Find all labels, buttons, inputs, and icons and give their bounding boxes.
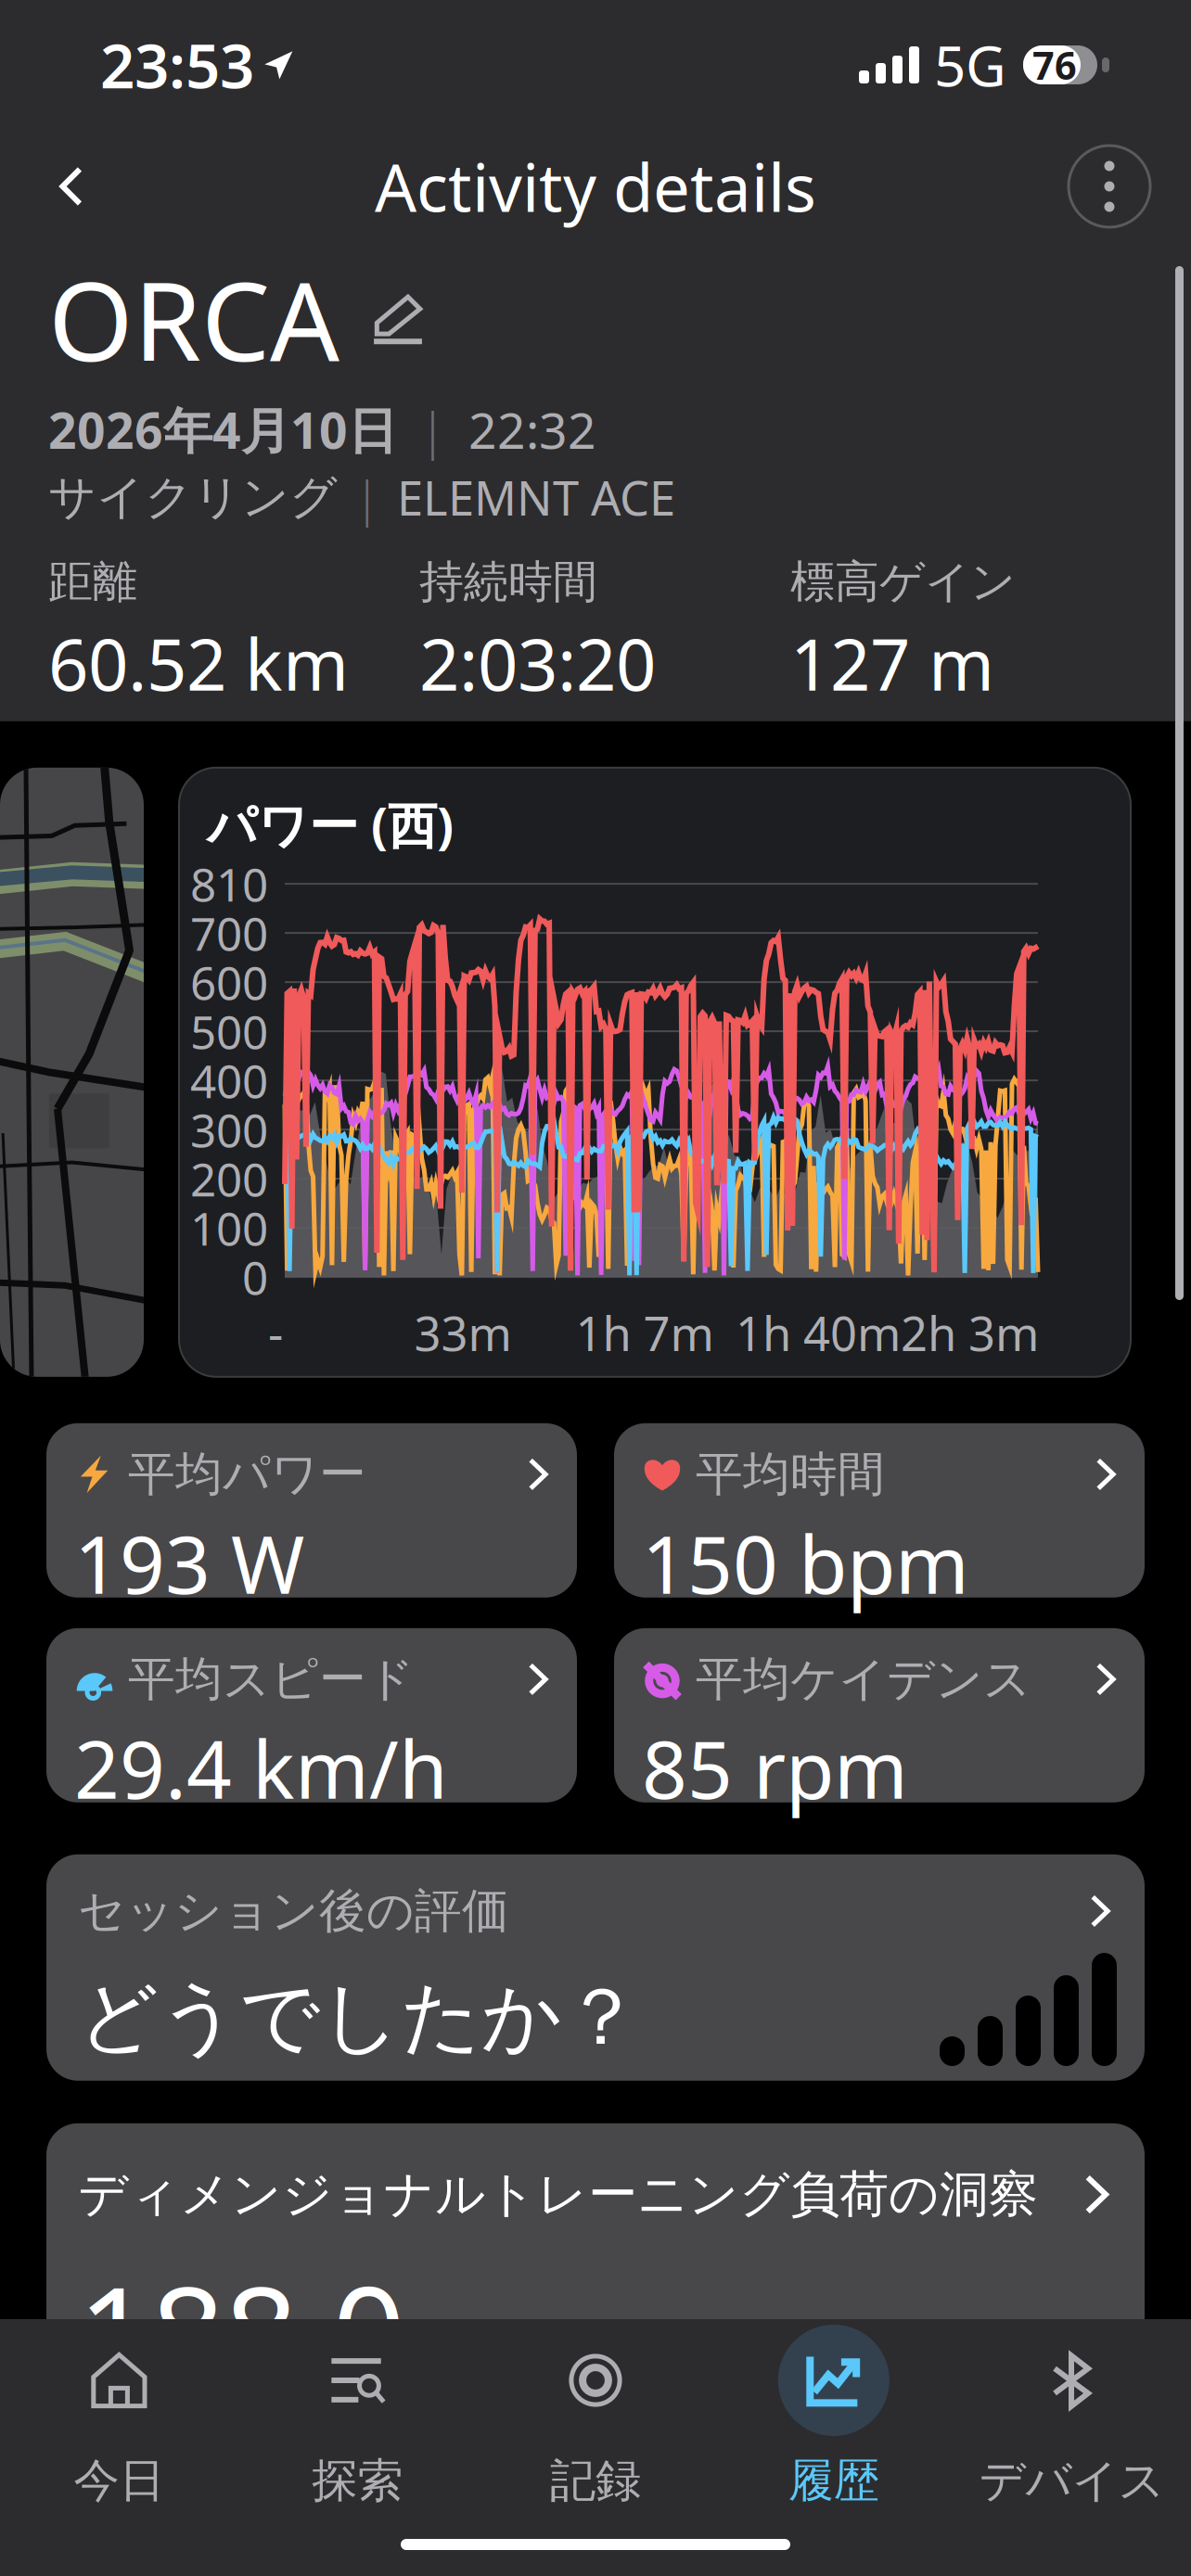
staticText: セッション後の評価 xyxy=(78,1882,509,1940)
button[interactable]: 平均時間 xyxy=(614,1423,1145,1598)
staticText: 127 m xyxy=(790,617,994,710)
staticText: 188.0 xyxy=(78,2245,405,2416)
staticText: | xyxy=(419,397,446,462)
staticText: 距離 xyxy=(48,554,137,609)
button[interactable]: 今日 xyxy=(0,2325,238,2509)
staticText: 700 xyxy=(190,903,268,963)
staticText: ディメンジョナルトレーニング負荷の洞察 xyxy=(78,2164,1038,2225)
staticText: どうでしたか？ xyxy=(78,1969,641,2066)
button[interactable]: 記録 xyxy=(476,2325,715,2509)
button[interactable]: More options xyxy=(1063,140,1156,233)
staticText: 500 xyxy=(190,1001,268,1062)
staticText: 60.52 km xyxy=(48,617,349,710)
staticText: 400 xyxy=(190,1050,268,1111)
staticText: サイクリング xyxy=(48,468,338,526)
button[interactable]: デバイス xyxy=(953,2325,1191,2509)
staticText: 200 xyxy=(190,1148,268,1209)
staticText: - xyxy=(268,1302,283,1364)
staticText: 平均スピード xyxy=(128,1650,415,1708)
staticText: | xyxy=(354,466,380,528)
staticText: 100 xyxy=(190,1197,268,1258)
button[interactable]: 平均スピード xyxy=(46,1628,577,1802)
staticText: 今日 xyxy=(74,2453,165,2509)
staticText: Activity details xyxy=(375,143,816,230)
staticText: 平均ケイデンス xyxy=(696,1650,1031,1708)
button[interactable]: 平均パワー xyxy=(46,1423,577,1598)
staticText: 300 xyxy=(190,1099,268,1160)
button[interactable]: 履歴 xyxy=(715,2325,953,2509)
staticText: 標高ゲイン xyxy=(790,554,1016,609)
staticText: 22:32 xyxy=(468,397,596,462)
staticText: 2:03:20 xyxy=(419,617,656,710)
staticText: ELEMNT ACE xyxy=(397,466,675,528)
staticText: ORCA xyxy=(48,247,339,391)
staticText: 探索 xyxy=(312,2453,403,2509)
staticText: 193 W xyxy=(74,1511,304,1616)
staticText: 85 rpm xyxy=(642,1715,908,1821)
staticText: 履歴 xyxy=(788,2453,879,2509)
staticText: 810 xyxy=(190,853,268,914)
staticText: 5G xyxy=(934,28,1006,102)
button[interactable]: Rename activity xyxy=(367,288,429,349)
staticText: 2026年4月10日 xyxy=(48,397,397,462)
staticText: 33m xyxy=(414,1302,512,1364)
staticText: デバイス xyxy=(979,2453,1165,2509)
staticText: 1h 40m xyxy=(736,1302,901,1364)
staticText: パワー (西) xyxy=(207,792,454,857)
staticText: 持続時間 xyxy=(419,554,597,609)
staticText: 平均時間 xyxy=(696,1445,885,1503)
staticText: 23:53 xyxy=(100,25,254,105)
button[interactable]: Back xyxy=(28,140,117,233)
button[interactable]: 平均ケイデンス xyxy=(614,1628,1145,1802)
staticText: 2h 3m xyxy=(901,1302,1039,1364)
staticText: 平均パワー xyxy=(128,1445,366,1503)
button[interactable]: セッション後の評価 xyxy=(46,1854,1145,2081)
staticText: 600 xyxy=(190,952,268,1013)
staticText: 記録 xyxy=(550,2453,641,2509)
button[interactable]: 探索 xyxy=(238,2325,476,2509)
staticText: 1h 7m xyxy=(576,1302,714,1364)
staticText: 76 xyxy=(1032,40,1077,90)
staticText: 150 bpm xyxy=(642,1511,969,1616)
staticText: 29.4 km/h xyxy=(74,1715,448,1821)
staticText: 0 xyxy=(242,1247,268,1307)
button[interactable]: ディメンジョナルトレーニング負荷の洞察 xyxy=(46,2123,1145,2401)
